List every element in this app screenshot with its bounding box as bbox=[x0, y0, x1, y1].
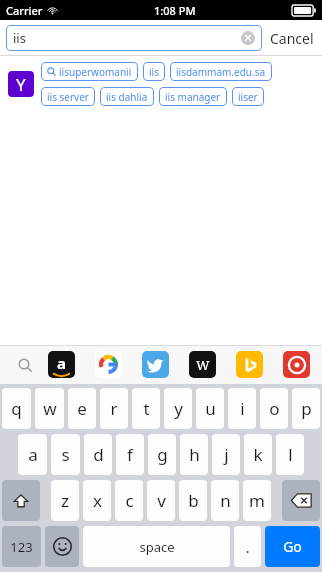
button[interactable]: Google bbox=[95, 351, 122, 378]
button[interactable]: Clear text bbox=[241, 31, 255, 45]
staticText: d bbox=[93, 443, 104, 466]
button[interactable]: e bbox=[68, 388, 96, 429]
staticText: W bbox=[196, 356, 210, 374]
staticText: m bbox=[249, 489, 265, 512]
staticText: l bbox=[288, 443, 293, 466]
button[interactable]: Emoji bbox=[45, 526, 79, 567]
button[interactable]: a bbox=[18, 434, 47, 475]
staticText: iisdammam.edu.sa bbox=[176, 65, 266, 79]
button[interactable]: t bbox=[132, 388, 160, 429]
button[interactable]: iisuperwomanii bbox=[41, 62, 138, 81]
button[interactable]: iis bbox=[143, 62, 165, 81]
staticText: 123 bbox=[10, 538, 33, 556]
staticText: a bbox=[57, 353, 66, 373]
button[interactable]: Wikipedia bbox=[189, 351, 216, 378]
button[interactable]: iiser bbox=[232, 87, 264, 106]
button[interactable]: iis server bbox=[41, 87, 95, 106]
button[interactable]: z bbox=[51, 480, 79, 521]
button[interactable]: l bbox=[276, 434, 304, 475]
staticText: o bbox=[269, 397, 280, 420]
button[interactable]: f bbox=[116, 434, 144, 475]
button[interactable]: 123 bbox=[2, 526, 41, 567]
button[interactable]: j bbox=[212, 434, 240, 475]
staticText: iiser bbox=[238, 90, 258, 104]
staticText: f bbox=[127, 443, 133, 466]
button[interactable]: i bbox=[228, 388, 256, 429]
staticText: q bbox=[11, 397, 22, 420]
staticText: iis dahlia bbox=[106, 90, 148, 104]
staticText: z bbox=[61, 489, 69, 512]
staticText: g bbox=[157, 443, 168, 466]
button[interactable]: d bbox=[84, 434, 112, 475]
button[interactable]: v bbox=[147, 480, 175, 521]
staticText: Carrier bbox=[6, 3, 43, 18]
button[interactable]: u bbox=[196, 388, 224, 429]
button[interactable]: Twitter bbox=[142, 351, 169, 378]
button[interactable]: g bbox=[148, 434, 176, 475]
staticText: s bbox=[61, 443, 70, 466]
button[interactable]: b bbox=[179, 480, 207, 521]
staticText: iis bbox=[149, 65, 159, 79]
staticText: space bbox=[139, 538, 175, 556]
staticText: t bbox=[143, 397, 150, 420]
staticText: p bbox=[301, 397, 312, 420]
staticText: r bbox=[110, 397, 118, 420]
button[interactable]: x bbox=[83, 480, 111, 521]
staticText: c bbox=[125, 489, 134, 512]
button[interactable]: . bbox=[234, 526, 261, 567]
button[interactable]: s bbox=[51, 434, 80, 475]
button[interactable]: iisdammam.edu.sa bbox=[170, 62, 272, 81]
button[interactable]: iis dahlia bbox=[100, 87, 154, 106]
staticText: j bbox=[224, 443, 229, 466]
button[interactable]: o bbox=[260, 388, 288, 429]
staticText: iis manager bbox=[165, 90, 221, 104]
button[interactable]: Cancel bbox=[262, 25, 316, 51]
button[interactable]: Shift bbox=[2, 480, 40, 521]
staticText: a bbox=[28, 443, 38, 466]
staticText: v bbox=[157, 489, 166, 512]
button[interactable]: Bing bbox=[236, 351, 263, 378]
staticText: n bbox=[220, 489, 231, 512]
button[interactable]: Search bbox=[12, 352, 38, 378]
button[interactable]: Amazon bbox=[48, 351, 75, 378]
staticText: Y bbox=[16, 73, 26, 96]
staticText: iis server bbox=[47, 90, 89, 104]
staticText: k bbox=[253, 443, 263, 466]
staticText: u bbox=[205, 397, 216, 420]
staticText: y bbox=[174, 397, 183, 420]
staticText: i bbox=[240, 397, 245, 420]
staticText: 1:08 PM bbox=[154, 3, 196, 18]
button[interactable]: r bbox=[100, 388, 128, 429]
staticText: e bbox=[77, 397, 87, 420]
button[interactable]: k bbox=[244, 434, 272, 475]
button[interactable]: Backspace bbox=[282, 480, 320, 521]
button[interactable]: c bbox=[115, 480, 143, 521]
button[interactable]: p bbox=[292, 388, 320, 429]
button[interactable]: Yahoo bbox=[8, 71, 34, 97]
staticText: . bbox=[245, 537, 250, 557]
button[interactable]: n bbox=[211, 480, 239, 521]
button[interactable]: y bbox=[164, 388, 192, 429]
button[interactable]: w bbox=[35, 388, 64, 429]
button[interactable]: Search engine bbox=[283, 351, 310, 378]
staticText: Cancel bbox=[270, 29, 314, 48]
staticText: w bbox=[43, 397, 57, 420]
button[interactable]: space bbox=[83, 526, 230, 567]
button[interactable]: h bbox=[180, 434, 208, 475]
staticText: b bbox=[188, 489, 199, 512]
button[interactable]: iis bbox=[6, 25, 262, 51]
staticText: x bbox=[93, 489, 102, 512]
button[interactable]: Go bbox=[265, 526, 320, 567]
staticText: iis bbox=[13, 29, 26, 47]
staticText: Go bbox=[283, 537, 302, 556]
staticText: h bbox=[189, 443, 200, 466]
staticText: iisuperwomanii bbox=[59, 65, 132, 79]
button[interactable]: iis manager bbox=[159, 87, 227, 106]
button[interactable]: m bbox=[243, 480, 271, 521]
button[interactable]: q bbox=[2, 388, 31, 429]
